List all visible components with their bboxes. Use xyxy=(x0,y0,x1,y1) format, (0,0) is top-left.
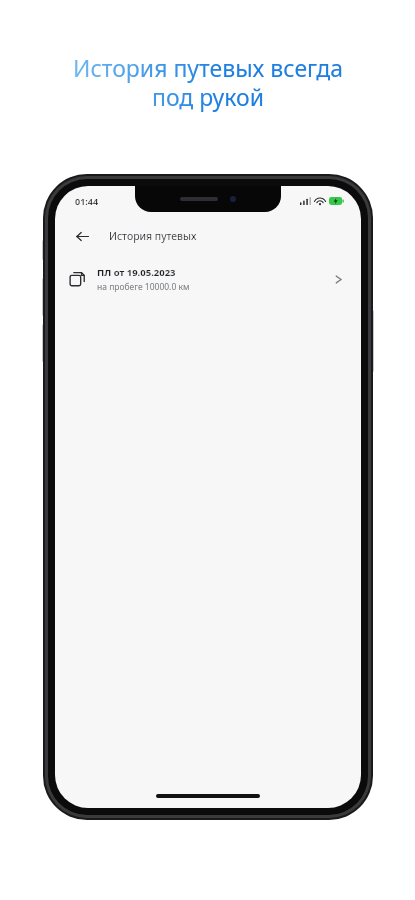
button[interactable]: ПЛ от 19.05.2023 xyxy=(55,256,361,302)
staticText: История путевых xyxy=(109,229,197,243)
staticText: 01:44 xyxy=(75,195,99,207)
staticText: История путевых всегда под рукой xyxy=(73,52,343,113)
staticText: на пробеге 10000.0 км xyxy=(97,281,190,293)
button[interactable]: Back xyxy=(69,223,95,249)
staticText: ПЛ от 19.05.2023 xyxy=(97,266,176,279)
